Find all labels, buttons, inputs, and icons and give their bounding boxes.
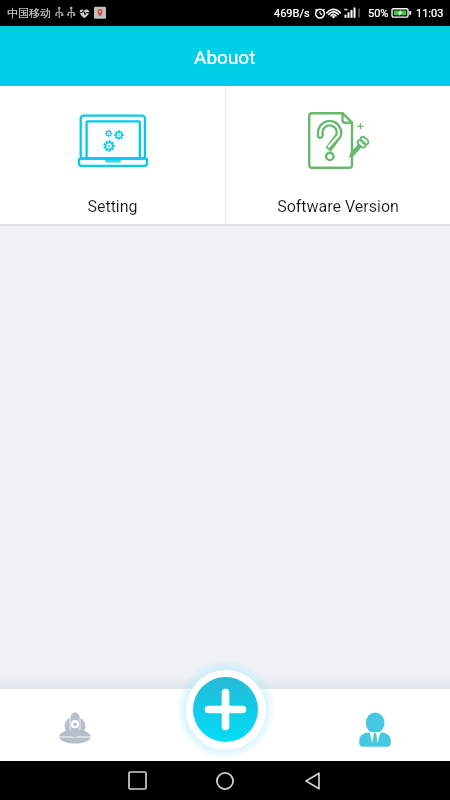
staticText: 11:03	[416, 7, 444, 20]
button[interactable]: Setting	[0, 86, 225, 224]
staticText: 469B/s	[274, 7, 310, 20]
button[interactable]: Camera	[47, 699, 102, 755]
button[interactable]: Recents	[117, 761, 158, 800]
button[interactable]: Profile	[347, 699, 402, 755]
staticText: 50%	[368, 7, 389, 20]
button[interactable]: Back	[291, 761, 333, 800]
button[interactable]: Add	[193, 677, 258, 742]
staticText: Setting	[87, 197, 138, 216]
button[interactable]: Home	[204, 761, 246, 800]
button[interactable]: Software Version	[225, 86, 450, 224]
staticText: Software Version	[277, 197, 399, 216]
staticText: Abouot	[194, 46, 256, 68]
staticText: 中国移动	[7, 6, 51, 20]
